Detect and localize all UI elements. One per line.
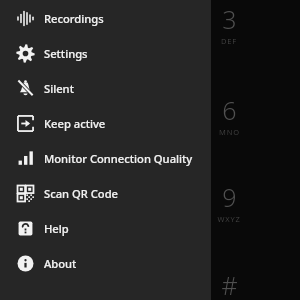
staticText: 9 [222,180,237,214]
button[interactable]: 9 [204,180,254,224]
staticText: # [221,268,238,300]
staticText: Scan QR Code [44,186,119,201]
staticText: Settings [44,46,88,61]
button[interactable]: Help [0,211,211,246]
button[interactable]: Monitor Connection Quality [0,141,211,176]
staticText: About [44,256,77,271]
button[interactable]: Silent [0,71,211,106]
staticText: Monitor Connection Quality [44,151,193,166]
staticText: Keep active [44,116,106,131]
staticText: WXYZ [217,214,241,224]
button[interactable]: About [0,246,211,281]
staticText: MNO [219,127,240,137]
button[interactable]: 6 [204,93,254,137]
staticText: 3 [222,2,237,36]
button[interactable]: Keep active [0,106,211,141]
staticText: Silent [44,81,74,96]
staticText: Help [44,221,69,236]
staticText: Recordings [44,11,104,26]
staticText: 6 [222,93,237,127]
staticText: DEF [221,36,237,46]
button[interactable]: # [204,268,254,300]
button[interactable]: Scan QR Code [0,176,211,211]
button[interactable]: 3 [204,2,254,46]
button[interactable]: Recordings [0,1,211,36]
button[interactable]: Settings [0,36,211,71]
